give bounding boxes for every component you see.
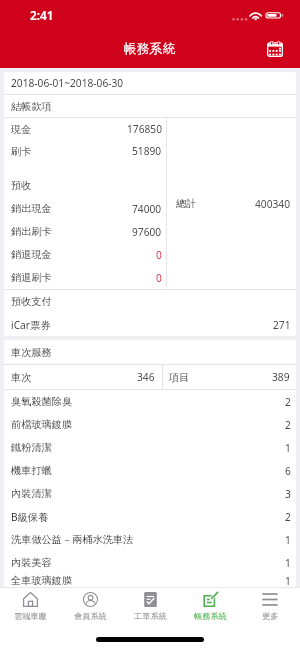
- staticText: 帳務系統: [194, 611, 227, 621]
- staticText: 雲端車廠: [14, 611, 47, 621]
- button[interactable]: 內裝清潔: [4, 482, 296, 505]
- staticText: B級保養: [11, 510, 49, 524]
- button[interactable]: B級保養: [4, 505, 296, 528]
- staticText: 會員系統: [74, 611, 107, 621]
- staticText: 346: [137, 370, 155, 384]
- staticText: 銷出刷卡: [11, 225, 52, 238]
- staticText: 97600: [132, 225, 162, 239]
- staticText: 2: [285, 510, 291, 524]
- staticText: 銷退現金: [11, 248, 52, 261]
- button[interactable]: 2018-06-01~2018-06-30: [4, 72, 296, 94]
- staticText: 鐵粉清潔: [11, 441, 52, 454]
- staticText: 結帳款項: [11, 100, 52, 113]
- staticText: 176850: [127, 122, 162, 136]
- staticText: 2: [285, 395, 291, 409]
- staticText: 工單系統: [134, 611, 167, 621]
- staticText: 預收: [11, 179, 32, 192]
- button[interactable]: 工單系統: [120, 588, 180, 624]
- button[interactable]: iCar票券: [4, 313, 296, 336]
- staticText: 51890: [132, 144, 162, 158]
- staticText: 400340: [255, 197, 290, 211]
- staticText: 2: [285, 418, 291, 432]
- staticText: 刷卡: [11, 145, 32, 158]
- button[interactable]: 機車打蠟: [4, 459, 296, 482]
- button[interactable]: Calendar: [262, 36, 288, 62]
- button[interactable]: 前檔玻璃鍍膜: [4, 413, 296, 436]
- staticText: 項目: [169, 371, 190, 384]
- staticText: 銷出現金: [11, 202, 52, 215]
- button[interactable]: 車次服務: [4, 340, 296, 364]
- button[interactable]: 全車玻璃鍍膜: [4, 574, 296, 587]
- staticText: 現金: [11, 123, 32, 136]
- staticText: 全車玻璃鍍膜: [11, 574, 73, 587]
- staticText: 3: [285, 487, 291, 501]
- staticText: 271: [273, 318, 291, 332]
- button[interactable]: 臭氧殺菌除臭: [4, 390, 296, 413]
- button[interactable]: 內裝美容: [4, 551, 296, 574]
- staticText: 車次服務: [11, 346, 52, 359]
- staticText: 臭氧殺菌除臭: [11, 395, 73, 408]
- button[interactable]: 更多: [240, 588, 300, 624]
- button[interactable]: 洗車做公益－兩桶水洗車法: [4, 528, 296, 551]
- staticText: 洗車做公益－兩桶水洗車法: [11, 533, 134, 546]
- button[interactable]: 雲端車廠: [0, 588, 60, 624]
- staticText: 74000: [132, 202, 162, 216]
- button[interactable]: 預收支付: [4, 290, 296, 313]
- staticText: 0: [156, 271, 162, 285]
- staticText: 0: [156, 248, 162, 262]
- staticText: 2:41: [30, 7, 54, 23]
- staticText: 6: [285, 464, 291, 478]
- staticText: 389: [272, 370, 290, 384]
- button[interactable]: 帳務系統: [180, 588, 240, 624]
- staticText: 預收支付: [11, 295, 52, 308]
- staticText: 1: [285, 533, 291, 547]
- button[interactable]: 會員系統: [60, 588, 120, 624]
- staticText: 1: [285, 574, 291, 587]
- staticText: 總計: [176, 197, 197, 210]
- staticText: 更多: [262, 611, 279, 621]
- staticText: 車次: [11, 371, 32, 384]
- staticText: 前檔玻璃鍍膜: [11, 418, 73, 431]
- staticText: 機車打蠟: [11, 464, 52, 477]
- staticText: 內裝美容: [11, 556, 52, 569]
- staticText: 內裝清潔: [11, 487, 52, 500]
- staticText: 帳務系統: [124, 41, 176, 57]
- staticText: 1: [285, 441, 291, 455]
- button[interactable]: 結帳款項: [4, 95, 296, 117]
- staticText: iCar票券: [11, 318, 51, 332]
- button[interactable]: 鐵粉清潔: [4, 436, 296, 459]
- staticText: 銷退刷卡: [11, 271, 52, 284]
- staticText: 2018-06-01~2018-06-30: [11, 76, 124, 90]
- staticText: 1: [285, 556, 291, 570]
